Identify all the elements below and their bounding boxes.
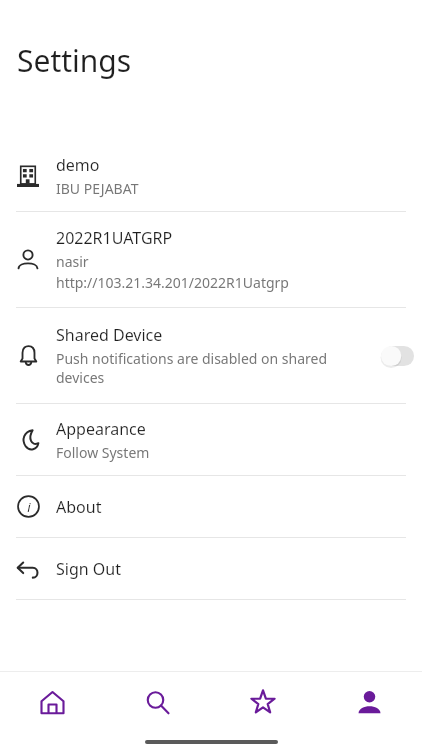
staticText: IBU PEJABAT [56, 179, 139, 198]
staticText: Sign Out [56, 558, 121, 580]
staticText: Shared Device [56, 324, 163, 346]
staticText: Settings [17, 40, 132, 81]
button[interactable]: 2022R1UATGRP [0, 212, 422, 307]
button[interactable]: Shared Device [0, 308, 422, 403]
staticText: Follow System [56, 443, 150, 462]
button[interactable]: i [0, 476, 422, 537]
button[interactable]: Profile [316, 671, 422, 733]
button[interactable]: Favorites [210, 671, 316, 733]
staticText: http://103.21.34.201/2022R1Uatgrp [56, 273, 289, 292]
button[interactable]: Toggle shared device [372, 308, 422, 403]
staticText: i [27, 498, 31, 516]
staticText: nasir [56, 252, 89, 271]
staticText: About [56, 496, 102, 518]
button[interactable]: Search [105, 671, 210, 733]
button[interactable]: Sign Out [0, 538, 422, 599]
staticText: Appearance [56, 418, 146, 440]
button[interactable]: demo [0, 140, 422, 211]
staticText: Push notifications are disabled on share… [56, 349, 364, 387]
button[interactable]: Appearance [0, 404, 422, 475]
staticText: demo [56, 154, 100, 176]
staticText: 2022R1UATGRP [56, 227, 173, 249]
button[interactable]: Home [0, 671, 105, 733]
